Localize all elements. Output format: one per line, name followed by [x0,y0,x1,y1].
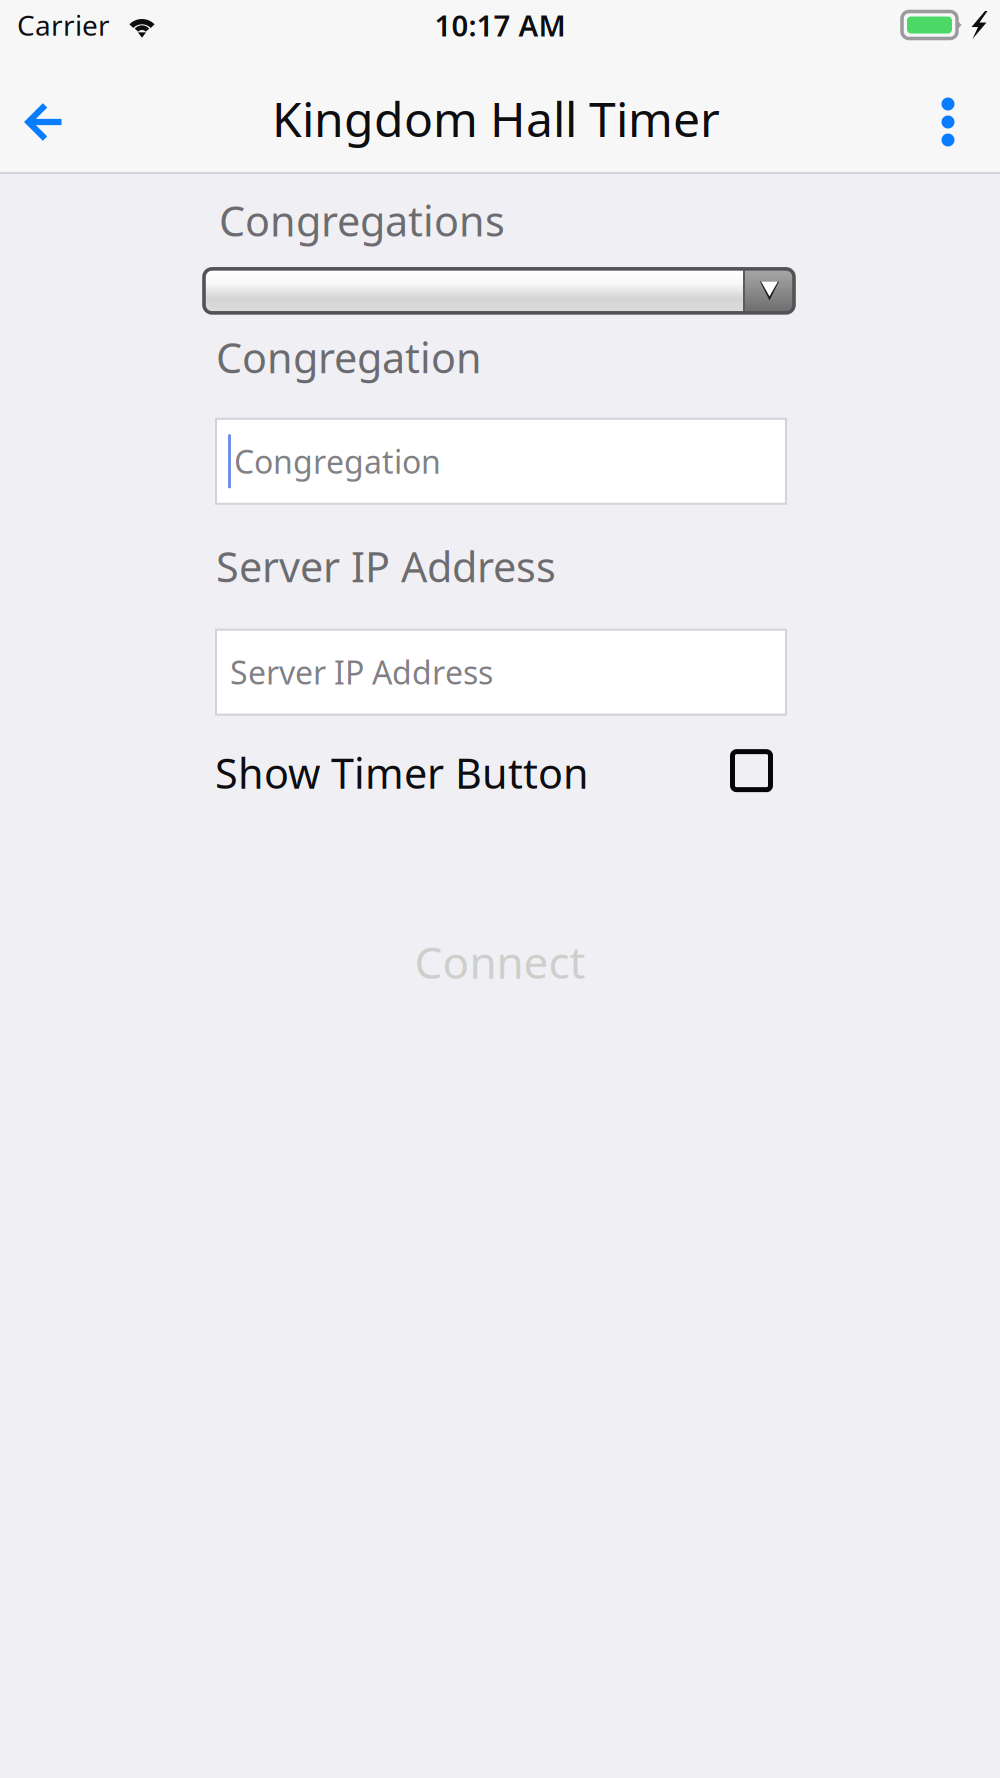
button[interactable]: Congregation [216,419,786,504]
button[interactable]: More options [904,58,992,186]
button[interactable]: Congregations picker [203,267,795,315]
staticText: 10:17 AM [434,5,565,44]
staticText: Congregations [219,193,505,248]
button[interactable]: Show Timer Button [215,743,773,803]
staticText: Show Timer Button [215,745,589,800]
button[interactable]: Back [0,58,86,186]
button[interactable]: Connect [0,930,1000,994]
staticText: Congregation [216,330,482,385]
staticText: Connect [414,932,585,991]
staticText: Server IP Address [216,539,556,594]
button[interactable]: Server IP Address [216,630,786,715]
staticText: Kingdom Hall Timer [272,87,720,150]
staticText: Congregation [234,440,441,482]
staticText: Carrier [17,6,110,44]
staticText: Server IP Address [230,651,493,693]
